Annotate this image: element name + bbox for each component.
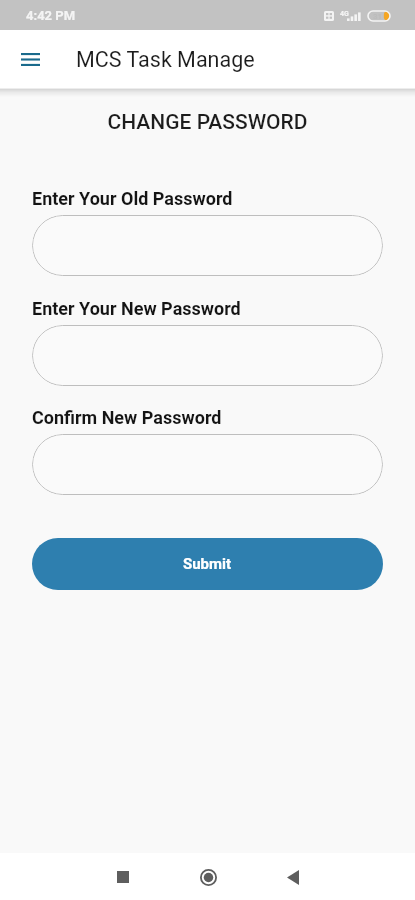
- button[interactable]: [32, 215, 383, 276]
- staticText: 4G: [340, 10, 349, 18]
- staticText: CHANGE PASSWORD: [0, 110, 415, 135]
- button[interactable]: Submit: [32, 538, 383, 590]
- button[interactable]: [32, 325, 383, 386]
- staticText: MCS Task Manage: [76, 47, 255, 72]
- button[interactable]: [32, 434, 383, 495]
- button[interactable]: Recent apps: [101, 855, 145, 899]
- staticText: 4:42 PM: [26, 8, 76, 23]
- staticText: Submit: [183, 555, 232, 573]
- button[interactable]: Open navigation menu: [10, 39, 50, 79]
- staticText: 31: [373, 12, 383, 21]
- button[interactable]: Home: [186, 855, 230, 899]
- button[interactable]: Back: [271, 855, 315, 899]
- staticText: Enter Your New Password: [32, 298, 241, 319]
- staticText: Enter Your Old Password: [32, 188, 233, 209]
- staticText: Confirm New Password: [32, 407, 222, 428]
